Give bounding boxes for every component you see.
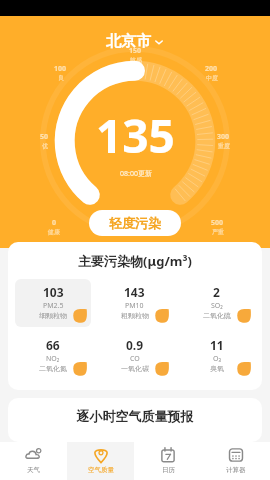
staticText: PM2.5 [43, 301, 64, 311]
staticText: 主要污染物(μg/m³) [8, 252, 262, 270]
staticText: 臭氧 [210, 364, 224, 373]
staticText: 粗颗粒物 [121, 311, 149, 320]
button[interactable]: 66 [15, 332, 91, 380]
staticText: 日历 [162, 466, 175, 474]
staticText: 逐小时空气质量预报 [8, 408, 262, 424]
staticText: 天气 [27, 466, 40, 474]
staticText: 500 [211, 218, 224, 228]
button[interactable]: 143 [96, 279, 173, 327]
staticText: 轻度污染 [109, 215, 161, 231]
staticText: 66 [46, 337, 60, 353]
other: 计算器 [227, 446, 245, 464]
button[interactable]: 11 [178, 332, 255, 380]
staticText: 良 [58, 74, 64, 82]
staticText: 300 [217, 132, 230, 142]
button[interactable]: 日历 [134, 442, 202, 480]
staticText: 重度 [218, 142, 230, 150]
staticText: SO₂ [211, 301, 223, 311]
staticText: 敏感 [130, 56, 142, 64]
button[interactable]: 2 [178, 279, 255, 327]
button[interactable]: 轻度污染 [89, 210, 181, 236]
staticText: 135 [96, 104, 175, 167]
staticText: 细颗粒物 [39, 311, 67, 320]
staticText: 严重 [212, 228, 224, 236]
other: 天气 [25, 446, 43, 464]
button[interactable]: 天气 [0, 442, 67, 480]
staticText: 0 [52, 218, 57, 228]
staticText: 143 [124, 284, 145, 300]
staticText: PM10 [125, 301, 144, 311]
staticText: 103 [43, 284, 64, 300]
staticText: 0.9 [126, 337, 144, 353]
staticText: 11 [210, 337, 224, 353]
staticText: 08:00更新 [120, 169, 152, 179]
staticText: 空气质量 [88, 466, 114, 474]
other: 日历 [159, 446, 177, 464]
staticText: O₃ [213, 354, 221, 364]
staticText: 健康 [48, 228, 60, 236]
staticText: 中度 [206, 74, 218, 82]
staticText: 200 [205, 64, 218, 74]
other: 空气质量 [92, 446, 110, 464]
staticText: 150 [129, 46, 142, 56]
staticText: 50 [40, 132, 49, 142]
button[interactable]: 103 [15, 279, 91, 327]
staticText: 2 [213, 284, 220, 300]
staticText: NO₂ [46, 354, 60, 364]
staticText: CO [130, 354, 140, 364]
button[interactable]: 0.9 [96, 332, 173, 380]
staticText: 计算器 [226, 466, 246, 474]
staticText: 优 [42, 142, 48, 150]
staticText: 北京市 [106, 32, 151, 51]
button[interactable]: 计算器 [202, 442, 270, 480]
staticText: 100 [54, 64, 67, 74]
button[interactable]: 空气质量 [67, 442, 134, 480]
staticText: 二氧化硫 [203, 311, 231, 320]
staticText: 二氧化氮 [39, 364, 67, 373]
button[interactable]: 北京市 [98, 30, 172, 53]
staticText: 一氧化碳 [121, 364, 149, 373]
